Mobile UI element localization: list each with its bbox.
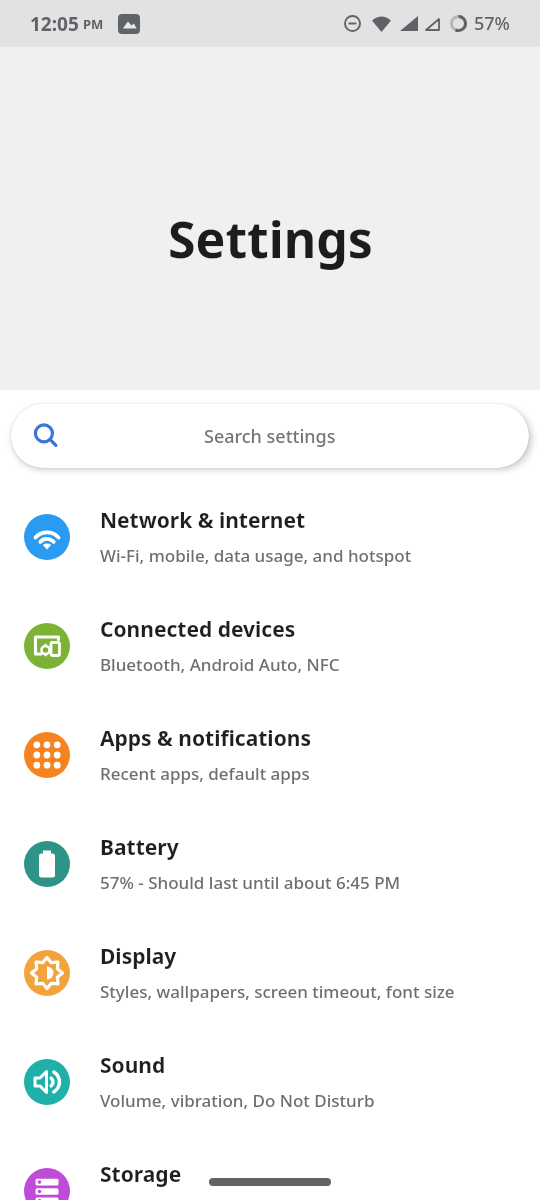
staticText: Apps & notifications (100, 724, 311, 753)
staticText: Settings (168, 205, 373, 273)
button[interactable]: Sound (0, 1027, 540, 1136)
staticText: Sound (100, 1051, 166, 1080)
button[interactable]: Storage (0, 1136, 540, 1200)
staticText: 57% (474, 11, 510, 36)
staticText: 57% - Should last until about 6:45 PM (100, 871, 401, 894)
staticText: Wi-Fi, mobile, data usage, and hotspot (100, 544, 412, 567)
staticText: Storage (100, 1160, 182, 1189)
staticText: 12:05 (30, 11, 79, 37)
button[interactable]: Search settings (11, 404, 529, 468)
button[interactable]: Display (0, 918, 540, 1027)
button[interactable]: Network & internet (0, 482, 540, 591)
staticText: Battery (100, 833, 179, 862)
button[interactable]: Apps & notifications (0, 700, 540, 809)
staticText: Styles, wallpapers, screen timeout, font… (100, 980, 455, 1003)
staticText: Volume, vibration, Do Not Disturb (100, 1089, 375, 1112)
staticText: Connected devices (100, 615, 296, 644)
staticText: Display (100, 942, 177, 971)
button[interactable]: Battery (0, 809, 540, 918)
staticText: Search settings (204, 424, 336, 449)
staticText: Recent apps, default apps (100, 762, 310, 785)
staticText: Network & internet (100, 506, 306, 535)
staticText: Bluetooth, Android Auto, NFC (100, 653, 340, 676)
button[interactable]: Connected devices (0, 591, 540, 700)
staticText: PM (83, 15, 104, 33)
